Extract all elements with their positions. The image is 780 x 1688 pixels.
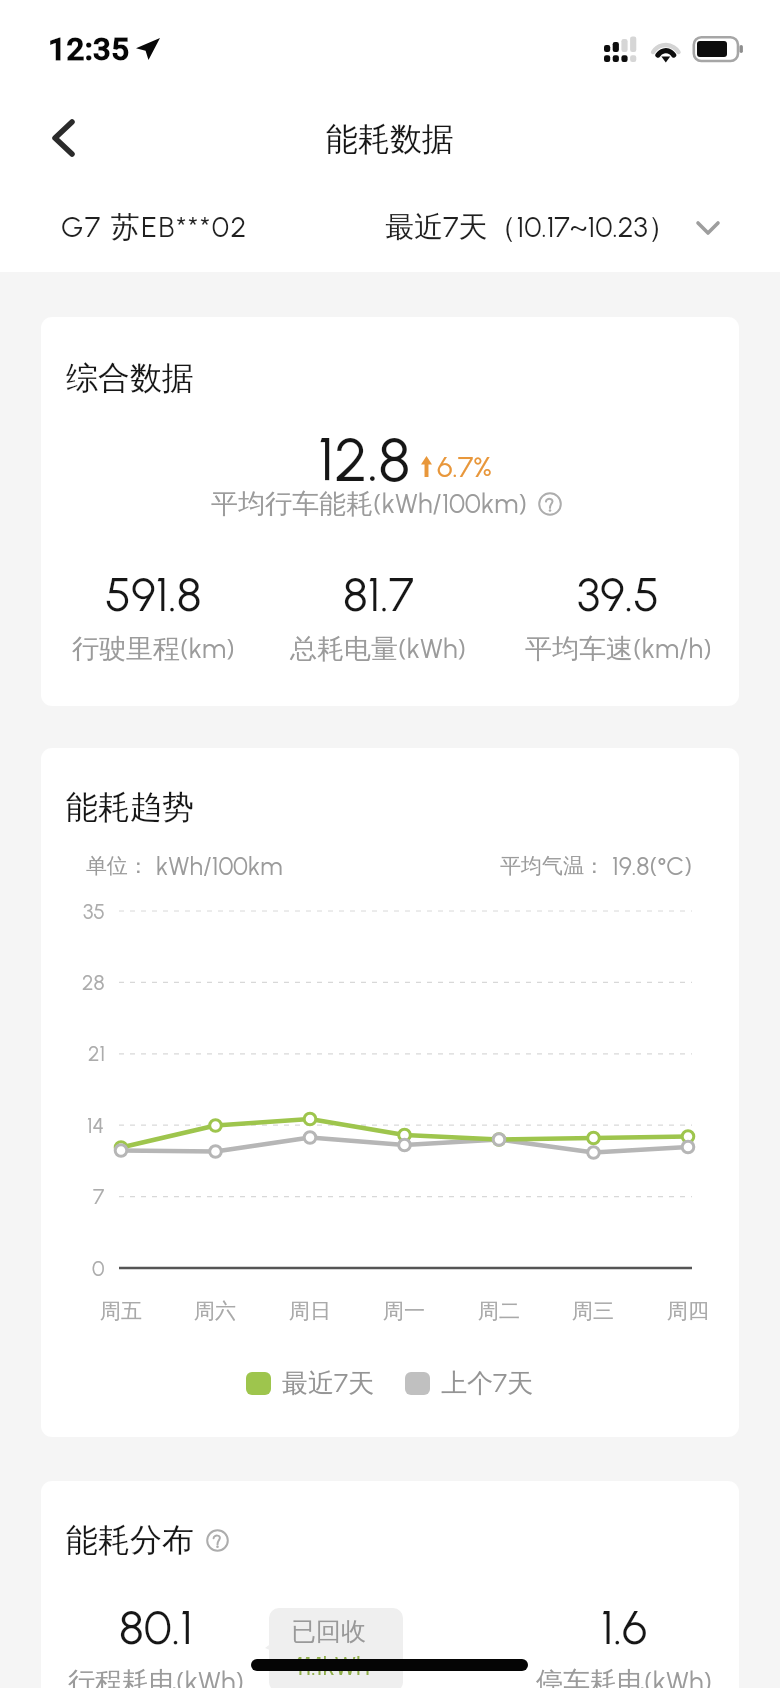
staticText: 周一 <box>383 1298 425 1324</box>
button[interactable]: 最近7天（10.17~10.23） <box>330 197 720 257</box>
staticText: 周四 <box>667 1298 709 1324</box>
staticText: 已回收 <box>291 1616 366 1647</box>
staticText: 能耗数据 <box>326 119 454 159</box>
staticText: 28 <box>82 970 105 995</box>
staticText: 12:35 <box>48 30 130 68</box>
staticText: 停车耗电(kWh) <box>536 1665 713 1688</box>
staticText: 12.8 <box>318 422 411 495</box>
staticText: 最近7天（10.17~10.23） <box>385 209 677 246</box>
staticText: 周三 <box>572 1298 614 1324</box>
staticText: 39.5 <box>577 566 660 622</box>
staticText: 周日 <box>289 1298 331 1324</box>
staticText: 81.7 <box>343 566 414 622</box>
staticText: 平均车速(km/h) <box>525 632 712 666</box>
staticText: 1.6 <box>601 1599 648 1655</box>
staticText: 591.8 <box>105 566 202 622</box>
staticText: 总耗电量(kWh) <box>290 632 467 666</box>
staticText: 单位： <box>86 853 149 879</box>
staticText: 行程耗电(kWh) <box>68 1665 245 1688</box>
staticText: 最近7天 <box>282 1367 374 1400</box>
staticText: 平均行车能耗(kWh/100km) <box>211 487 527 521</box>
staticText: 周六 <box>194 1298 236 1324</box>
staticText: G7 苏EB***02 <box>61 209 248 246</box>
staticText: 7 <box>93 1184 105 1209</box>
staticText: 19.8(°C) <box>612 851 693 881</box>
staticText: 14 <box>87 1113 105 1138</box>
staticText: 能耗趋势 <box>66 787 194 827</box>
staticText: 6.7% <box>437 449 492 484</box>
staticText: 上个7天 <box>441 1367 533 1400</box>
staticText: 35 <box>83 899 105 924</box>
staticText: 41.1kWh <box>291 1651 370 1681</box>
staticText: 综合数据 <box>66 358 194 398</box>
staticText: 行驶里程(km) <box>72 632 235 666</box>
staticText: 周二 <box>478 1298 520 1324</box>
staticText: 80.1 <box>119 1599 193 1655</box>
staticText: 周五 <box>100 1298 142 1324</box>
staticText: 平均气温： <box>500 853 605 879</box>
staticText: kWh/100km <box>156 851 283 881</box>
staticText: 21 <box>88 1041 105 1066</box>
staticText: 能耗分布 <box>66 1520 194 1560</box>
button[interactable]: 上个7天 <box>405 1367 533 1400</box>
button[interactable]: 最近7天 <box>246 1367 374 1400</box>
button[interactable]: Back <box>24 98 104 178</box>
staticText: 0 <box>92 1256 105 1281</box>
